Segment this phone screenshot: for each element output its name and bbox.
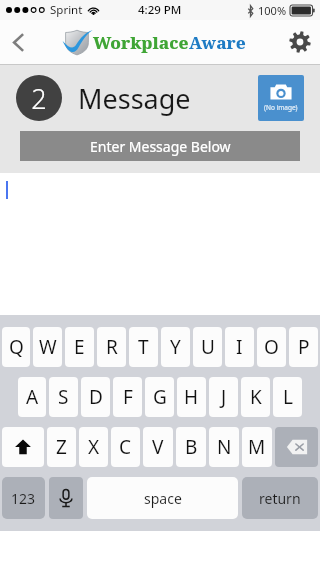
button[interactable]: A (18, 377, 46, 417)
staticText: F (123, 384, 133, 410)
staticText: Message (78, 80, 191, 117)
button[interactable]: W (33, 327, 62, 367)
staticText: O (264, 334, 279, 360)
staticText: T (138, 334, 149, 360)
staticText: I (236, 334, 243, 360)
button[interactable]: N (209, 427, 239, 467)
staticText: P (298, 334, 310, 360)
button[interactable]: Back (0, 24, 36, 60)
button[interactable]: L (273, 377, 302, 417)
staticText: 2 (31, 80, 47, 117)
button[interactable]: K (241, 377, 270, 417)
button[interactable]: S (49, 377, 78, 417)
button[interactable]: G (145, 377, 174, 417)
button[interactable]: V (143, 427, 173, 467)
staticText: C (119, 434, 132, 460)
staticText: M (248, 434, 266, 460)
staticText: Enter Message Below (90, 137, 231, 156)
staticText: L (283, 384, 293, 410)
button[interactable]: Q (2, 327, 30, 367)
staticText: V (152, 434, 164, 460)
staticText: U (201, 334, 215, 360)
staticText: space (144, 489, 182, 508)
button[interactable]: return (242, 477, 318, 519)
button[interactable]: D (81, 377, 110, 417)
staticText: Sprint (50, 2, 83, 18)
button[interactable]: T (129, 327, 158, 367)
button[interactable]: F (113, 377, 142, 417)
button[interactable]: I (225, 327, 254, 367)
staticText: D (89, 384, 103, 410)
staticText: X (88, 434, 100, 460)
button[interactable]: P (289, 327, 318, 367)
button[interactable]: Z (47, 427, 76, 467)
button[interactable]: J (209, 377, 238, 417)
button[interactable]: U (193, 327, 222, 367)
button[interactable]: R (97, 327, 126, 367)
staticText: J (221, 384, 227, 410)
button[interactable]: M (242, 427, 272, 467)
button[interactable]: space (87, 477, 238, 519)
staticText: S (58, 384, 69, 410)
staticText: A (26, 384, 39, 410)
staticText: 123 (11, 489, 36, 508)
button[interactable]: X (79, 427, 108, 467)
staticText: Aware (189, 31, 246, 54)
staticText: H (184, 384, 199, 410)
button[interactable]: Settings (280, 22, 320, 62)
button[interactable]: Dictate (49, 477, 83, 519)
staticText: 4:29 PM (138, 2, 182, 18)
button[interactable]: Add photo, no image (258, 75, 304, 121)
button[interactable]: H (177, 377, 206, 417)
button[interactable]: Shift (2, 427, 44, 467)
staticText: W (39, 334, 57, 360)
staticText: R (106, 334, 118, 360)
staticText: Z (56, 434, 67, 460)
staticText: K (250, 384, 262, 410)
button[interactable]: Enter Message Below (20, 131, 300, 161)
staticText: Y (170, 334, 181, 360)
staticText: return (259, 489, 301, 508)
staticText: B (185, 434, 198, 460)
staticText: E (74, 334, 85, 360)
button[interactable]: E (65, 327, 94, 367)
button[interactable]: 123 (2, 477, 45, 519)
staticText: (No image) (264, 103, 298, 112)
button[interactable]: B (176, 427, 206, 467)
button[interactable]: Y (161, 327, 190, 367)
button[interactable]: O (257, 327, 286, 367)
staticText: Workplace (93, 31, 189, 54)
staticText: Q (9, 334, 24, 360)
button[interactable]: C (111, 427, 140, 467)
button[interactable] (0, 173, 320, 315)
staticText: 100% (258, 3, 287, 18)
staticText: G (153, 384, 167, 410)
button[interactable]: Backspace (275, 427, 318, 467)
staticText: N (217, 434, 232, 460)
